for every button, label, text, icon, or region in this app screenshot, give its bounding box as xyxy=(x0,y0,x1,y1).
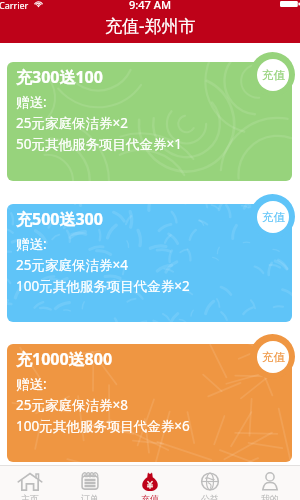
staticText: Carrier xyxy=(0,0,29,11)
staticText: 充值 xyxy=(262,350,285,364)
staticText: 充值 xyxy=(262,210,285,224)
staticText: 赠送: xyxy=(16,375,47,393)
staticText: 赠送: xyxy=(16,93,47,111)
staticText: 充500送300 xyxy=(16,208,103,230)
button[interactable]: 主页 xyxy=(0,466,60,500)
button[interactable]: 订单 xyxy=(60,466,120,500)
button[interactable]: 充值 xyxy=(250,334,295,379)
staticText: 25元家庭保洁券×8 xyxy=(16,396,128,414)
staticText: 充1000送800 xyxy=(16,348,113,370)
staticText: 主页 xyxy=(21,493,39,500)
staticText: 100元其他服务项目代金券×6 xyxy=(16,417,190,435)
staticText: 50元其他服务项目代金券×1 xyxy=(16,135,182,153)
staticText: 25元家庭保洁券×4 xyxy=(16,256,128,274)
button[interactable]: 充值 xyxy=(250,52,295,97)
staticText: 我的 xyxy=(261,493,279,500)
button[interactable]: 充值 xyxy=(250,194,295,239)
button[interactable]: 充1000送800 xyxy=(7,344,292,462)
staticText: 充值-郑州市 xyxy=(105,14,196,37)
button[interactable]: 充500送300 xyxy=(7,204,292,322)
staticText: 充值 xyxy=(262,68,285,82)
staticText: 25元家庭保洁券×2 xyxy=(16,114,128,132)
button[interactable]: 充300送100 xyxy=(7,62,292,181)
staticText: 赠送: xyxy=(16,235,47,253)
staticText: 订单 xyxy=(81,493,99,500)
staticText: 100元其他服务项目代金券×2 xyxy=(16,277,190,295)
staticText: 公益 xyxy=(201,493,219,500)
button[interactable]: 充值 xyxy=(120,466,180,500)
staticText: 9:47 AM xyxy=(129,0,172,10)
button[interactable]: 公益 xyxy=(180,466,240,500)
staticText: 充值 xyxy=(141,493,159,500)
button[interactable]: 我的 xyxy=(240,466,300,500)
staticText: 充300送100 xyxy=(16,66,103,88)
